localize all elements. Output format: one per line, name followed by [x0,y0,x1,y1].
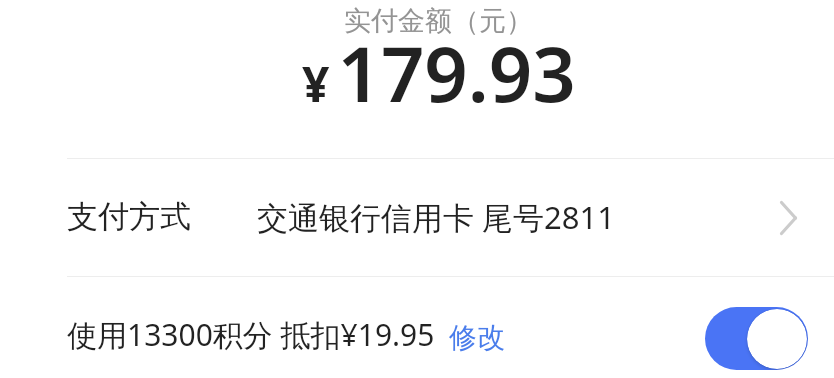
button[interactable]: 修改 [449,320,505,355]
staticText: 支付方式 [67,197,191,236]
staticText: 交通银行信用卡 尾号2811 [257,196,615,238]
staticText: 修改 [449,320,505,355]
staticText: 实付金额（元） [344,4,533,38]
button[interactable]: Use points toggle [705,307,808,370]
staticText: ¥ 179.93 [302,21,576,107]
staticText: 使用13300积分 抵扣¥19.95 [67,314,435,355]
button[interactable]: 支付方式 [0,158,834,275]
